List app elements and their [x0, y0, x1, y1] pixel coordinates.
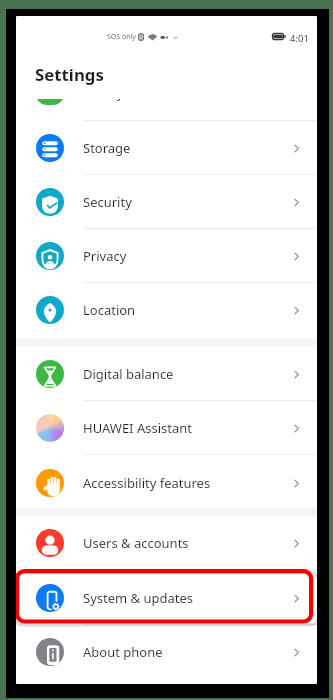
- button[interactable]: Security: [16, 175, 317, 229]
- button[interactable]: Users & accounts: [16, 516, 317, 570]
- button[interactable]: About phone: [16, 625, 317, 679]
- button[interactable]: Digital balance: [16, 347, 317, 401]
- button[interactable]: Storage: [16, 121, 317, 175]
- button[interactable]: System & updates: [16, 571, 317, 625]
- staticText: Location: [83, 301, 136, 319]
- button[interactable]: Accessibility features: [16, 456, 317, 510]
- staticText: SOS only: [107, 32, 136, 42]
- staticText: HUAWEI Assistant: [83, 419, 192, 437]
- staticText: About phone: [83, 643, 163, 661]
- staticText: Privacy: [83, 247, 127, 265]
- button[interactable]: Location: [16, 283, 317, 337]
- staticText: Settings: [35, 63, 104, 86]
- staticText: Storage: [83, 139, 131, 157]
- staticText: Security: [83, 193, 132, 211]
- staticText: Users & accounts: [83, 534, 189, 552]
- staticText: Accessibility features: [83, 474, 211, 492]
- staticText: Digital balance: [83, 365, 174, 383]
- staticText: Battery: [79, 99, 124, 102]
- staticText: 4:01: [290, 32, 309, 45]
- button[interactable]: Privacy: [16, 229, 317, 283]
- button[interactable]: HUAWEI Assistant: [16, 401, 317, 455]
- staticText: System & updates: [83, 589, 194, 607]
